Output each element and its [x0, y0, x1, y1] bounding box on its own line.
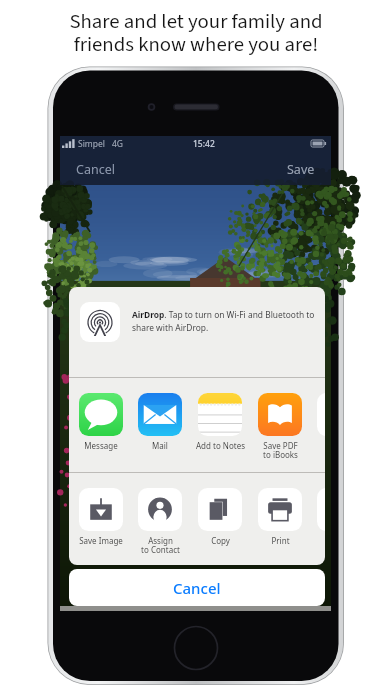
staticText: Simpel	[78, 138, 106, 150]
button[interactable]: Print	[258, 488, 302, 550]
staticText: Share and let your family and friends kn…	[69, 7, 323, 60]
button[interactable]: Assign to Contact	[138, 488, 182, 550]
button[interactable]: Message	[79, 393, 123, 455]
staticText: 15:42	[193, 138, 215, 150]
button[interactable]: Cancel	[76, 161, 115, 178]
button[interactable]: Cancel	[69, 569, 325, 606]
staticText: Cancel	[173, 578, 221, 598]
button[interactable]: Save	[287, 161, 315, 178]
staticText: AirDrop. Tap to turn on Wi-Fi and Blueto…	[132, 309, 315, 334]
staticText: Add to Notes	[196, 440, 245, 451]
button[interactable]: AirDrop. Tap to turn on Wi-Fi and Blueto…	[69, 287, 325, 377]
staticText: Print	[271, 535, 290, 546]
button[interactable]: Watch	[317, 488, 325, 550]
staticText: Cancel	[76, 161, 115, 178]
button[interactable]: Save Image	[79, 488, 123, 550]
staticText: Save PDF to iBooks	[263, 440, 298, 461]
staticText: Copy	[211, 535, 230, 546]
button[interactable]: Mail	[138, 393, 182, 455]
button[interactable]: Add to Notes	[198, 393, 242, 455]
staticText: 4G	[112, 138, 124, 150]
staticText: Save Image	[79, 535, 123, 546]
staticText: Message	[84, 440, 118, 451]
button[interactable]: Copy	[198, 488, 242, 550]
staticText: Mail	[152, 440, 168, 451]
staticText: Save	[287, 161, 315, 178]
button[interactable]: More	[317, 393, 325, 455]
staticText: Assign to Contact	[141, 535, 180, 556]
button[interactable]: Save PDF to iBooks	[258, 393, 302, 455]
